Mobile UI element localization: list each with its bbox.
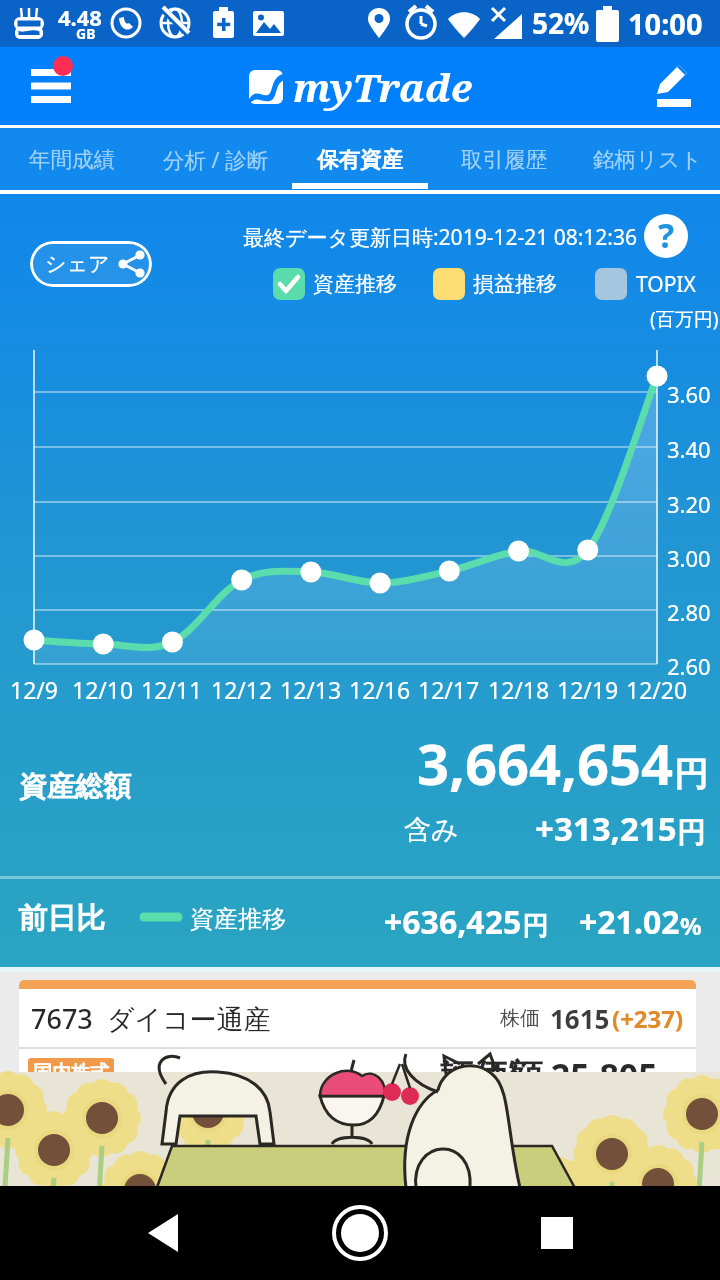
staticText: 分析 / 診断	[163, 145, 269, 174]
staticText: 12/9	[10, 674, 59, 705]
staticText: 12/11	[141, 674, 203, 705]
button[interactable]: Edit	[644, 54, 708, 118]
button[interactable]: Advertisement	[0, 1072, 720, 1186]
staticText: (+237)	[612, 1002, 684, 1035]
staticText: 評価額 25,805	[440, 1052, 658, 1098]
staticText: 12/20	[626, 674, 688, 705]
staticText: +21.02	[579, 900, 680, 944]
staticText: 2.80	[667, 597, 711, 627]
staticText: 銘柄リスト	[593, 146, 703, 173]
button[interactable]: Help	[644, 214, 688, 258]
staticText: 資産推移	[313, 271, 397, 297]
staticText: シェア	[45, 251, 110, 277]
staticText: 52%	[532, 4, 590, 42]
staticText: myTrade	[293, 60, 472, 113]
staticText: 損益推移	[473, 271, 557, 297]
button[interactable]: Menu	[10, 48, 86, 124]
staticText: ?	[658, 214, 675, 256]
staticText: 12/19	[557, 674, 619, 705]
staticText: 資産総額	[19, 769, 131, 804]
staticText: 国内株式	[33, 1061, 109, 1085]
staticText: 含み	[404, 813, 459, 847]
button[interactable]: 年間成績	[0, 128, 144, 190]
staticText: 円	[674, 753, 708, 796]
staticText: 12/12	[211, 674, 273, 705]
staticText: GB	[76, 24, 96, 43]
staticText: 最終データ更新日時:2019-12-21 08:12:36	[243, 223, 638, 252]
staticText: 取引履歴	[461, 146, 547, 173]
button[interactable]: 7673 ダイコー通産	[19, 980, 696, 1090]
staticText: 12/16	[349, 674, 411, 705]
staticText: 12/10	[72, 674, 134, 705]
staticText: 3.00	[667, 543, 711, 573]
staticText: 1615	[550, 1001, 610, 1036]
staticText: 2.60	[667, 651, 711, 681]
staticText: 株価	[500, 1006, 540, 1031]
staticText: 3,664,654	[417, 725, 674, 801]
staticText: 円	[522, 910, 548, 943]
staticText: (百万円)	[650, 306, 719, 332]
staticText: +636,425	[384, 900, 522, 944]
staticText: TOPIX	[636, 270, 696, 299]
staticText: 円	[677, 815, 705, 850]
button[interactable]: 取引履歴	[432, 128, 576, 190]
staticText: 年間成績	[29, 146, 115, 173]
button[interactable]: シェア	[30, 241, 152, 287]
staticText: %	[680, 909, 702, 942]
staticText: 3.20	[667, 489, 711, 519]
staticText: 12/13	[280, 674, 342, 705]
staticText: 保有資産	[317, 146, 403, 173]
staticText: 12/18	[488, 674, 550, 705]
staticText: 12/17	[418, 674, 480, 705]
staticText: 10:00	[628, 4, 703, 43]
button[interactable]: 銘柄リスト	[576, 128, 720, 190]
staticText: 4.48	[58, 2, 102, 32]
staticText: 資産推移	[190, 904, 286, 934]
staticText: 3.40	[667, 434, 711, 464]
staticText: 7673 ダイコー通産	[31, 1000, 271, 1037]
staticText: +313,215	[535, 806, 677, 851]
button[interactable]: 保有資産	[288, 128, 432, 190]
staticText: 3.60	[667, 379, 711, 409]
staticText: 前日比	[18, 900, 105, 937]
button[interactable]: 分析 / 診断	[144, 128, 288, 190]
